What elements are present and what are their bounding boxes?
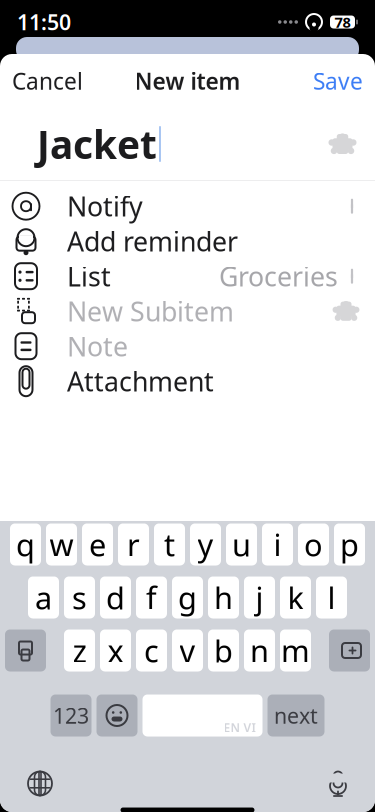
staticText: Notify (67, 188, 143, 224)
staticText: 78 (334, 12, 350, 32)
staticText: Add reminder (67, 223, 238, 259)
button[interactable]: m (280, 629, 311, 671)
button[interactable]: c (136, 629, 167, 671)
button[interactable]: Notify (0, 189, 375, 224)
button[interactable]: o (298, 523, 329, 565)
staticText: v (179, 630, 195, 671)
staticText: x (107, 630, 123, 671)
staticText: Groceries (219, 258, 338, 294)
button[interactable]: w (46, 523, 77, 565)
button[interactable]: next (267, 694, 324, 736)
button[interactable]: j (244, 576, 275, 618)
staticText: e (89, 524, 106, 565)
staticText: l (327, 577, 335, 618)
staticText: j (255, 577, 263, 618)
button[interactable]: y (190, 523, 221, 565)
staticText: i (273, 524, 281, 565)
staticText: y (197, 524, 213, 565)
staticText: h (214, 577, 233, 618)
button[interactable]: List (0, 259, 375, 294)
staticText: Save (313, 66, 363, 96)
staticText: s (72, 577, 87, 618)
staticText: u (232, 524, 251, 565)
button[interactable]: d (100, 576, 131, 618)
staticText: 123 (53, 701, 89, 730)
button[interactable]: n (244, 629, 275, 671)
staticText: d (106, 577, 125, 618)
button[interactable]: Favorite (322, 123, 363, 164)
button[interactable]: t (154, 523, 185, 565)
button[interactable]: e (82, 523, 113, 565)
button[interactable]: h (208, 576, 239, 618)
staticText: next (274, 701, 318, 730)
button[interactable]: r (118, 523, 149, 565)
button[interactable]: Dictate (318, 759, 358, 807)
button[interactable]: Space (142, 682, 262, 748)
button[interactable]: v (172, 629, 203, 671)
staticText: g (178, 577, 197, 618)
staticText: Jacket (37, 118, 157, 170)
button[interactable]: g (172, 576, 203, 618)
button[interactable]: Shift (5, 629, 46, 671)
button[interactable]: 123 (50, 694, 91, 736)
button[interactable]: q (10, 523, 41, 565)
button[interactable]: New Subitem (0, 294, 375, 329)
staticText: Note (67, 328, 128, 364)
staticText: Cancel (12, 66, 83, 96)
staticText: f (146, 577, 157, 618)
button[interactable]: a (28, 576, 59, 618)
staticText: c (144, 630, 159, 671)
staticText: k (287, 577, 303, 618)
button[interactable]: Attachment (0, 364, 375, 399)
staticText: b (214, 630, 233, 671)
button[interactable]: Note (0, 329, 375, 364)
staticText: Attachment (67, 363, 214, 399)
button[interactable]: Delete (329, 629, 370, 671)
staticText: z (72, 630, 86, 671)
staticText: w (49, 524, 73, 565)
button[interactable]: Switch keyboard (17, 760, 63, 806)
button[interactable]: l (316, 576, 347, 618)
button[interactable]: z (64, 629, 95, 671)
button[interactable]: Cancel (0, 57, 95, 105)
staticText: q (16, 524, 35, 565)
staticText: EN VI (223, 719, 255, 735)
button[interactable]: x (100, 629, 131, 671)
button[interactable]: i (262, 523, 293, 565)
button[interactable]: k (280, 576, 311, 618)
button[interactable]: Add reminder (0, 224, 375, 259)
staticText: p (340, 524, 359, 565)
button[interactable]: Emoji (96, 694, 137, 736)
staticText: r (127, 524, 140, 565)
button[interactable]: Save (301, 57, 375, 105)
staticText: 11:50 (17, 8, 71, 36)
staticText: m (281, 630, 310, 671)
staticText: o (304, 524, 323, 565)
button[interactable]: u (226, 523, 257, 565)
staticText: n (250, 630, 269, 671)
staticText: New Subitem (67, 293, 234, 329)
staticText: a (35, 577, 52, 618)
staticText: List (67, 258, 111, 294)
button[interactable]: b (208, 629, 239, 671)
staticText: New item (134, 66, 240, 96)
button[interactable]: s (64, 576, 95, 618)
staticText: t (164, 524, 175, 565)
button[interactable]: p (334, 523, 365, 565)
button[interactable]: f (136, 576, 167, 618)
